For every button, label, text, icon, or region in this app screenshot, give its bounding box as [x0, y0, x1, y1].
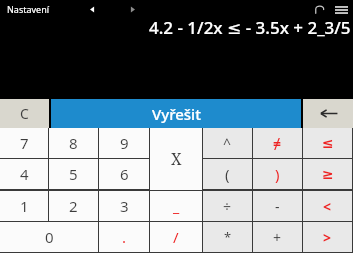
button[interactable]: *	[203, 222, 252, 252]
staticText: Vyřešit	[152, 104, 201, 124]
staticText: 0	[45, 227, 54, 247]
button[interactable]: /	[150, 222, 202, 252]
staticText: -	[275, 197, 280, 216]
button[interactable]: Previous	[84, 1, 100, 17]
staticText: ^	[223, 134, 232, 153]
button[interactable]: X	[150, 128, 202, 190]
button[interactable]: 1	[0, 191, 48, 221]
button[interactable]: 6	[99, 159, 149, 189]
button[interactable]: Vyřešit	[51, 99, 301, 128]
button[interactable]: 9	[99, 128, 149, 158]
staticText: ÷	[223, 197, 232, 216]
button[interactable]: 8	[49, 128, 98, 158]
staticText: X	[171, 148, 182, 170]
staticText: 5	[69, 164, 78, 184]
staticText: *	[224, 228, 232, 246]
button[interactable]: C	[0, 99, 49, 128]
button[interactable]: Undo	[311, 1, 327, 17]
button[interactable]: (	[203, 159, 252, 189]
staticText: _	[173, 197, 180, 216]
button[interactable]: ÷	[203, 191, 252, 221]
staticText: /	[173, 227, 179, 247]
button[interactable]: <	[303, 191, 352, 221]
staticText: <	[323, 197, 332, 216]
staticText: .	[122, 227, 127, 247]
button[interactable]: Backspace	[303, 99, 353, 128]
button[interactable]: Next	[124, 1, 140, 17]
staticText: Nastavení	[7, 3, 50, 15]
button[interactable]: Nastavení	[4, 1, 53, 17]
staticText: >	[323, 228, 332, 247]
button[interactable]: 3	[99, 191, 149, 221]
button[interactable]: ≤	[303, 128, 352, 158]
staticText: 3	[120, 196, 129, 216]
staticText: +	[273, 228, 282, 247]
staticText: 9	[120, 133, 129, 153]
staticText: ≤	[322, 135, 334, 151]
button[interactable]: _	[150, 191, 202, 221]
staticText: C	[20, 104, 29, 123]
staticText: (	[225, 164, 230, 184]
staticText: 7	[20, 133, 29, 153]
staticText: ≥	[322, 166, 334, 182]
button[interactable]: 4	[0, 159, 48, 189]
button[interactable]: ≠	[253, 128, 302, 158]
staticText: )	[275, 164, 280, 184]
button[interactable]: +	[253, 222, 302, 252]
button[interactable]: )	[253, 159, 302, 189]
staticText: 4	[20, 164, 29, 184]
button[interactable]: .	[99, 222, 149, 252]
button[interactable]: 2	[49, 191, 98, 221]
button[interactable]: 5	[49, 159, 98, 189]
button[interactable]: 0	[0, 222, 98, 252]
button[interactable]: ^	[203, 128, 252, 158]
staticText: 4.2 - 1/2x ≤ - 3.5x + 2_3/5	[149, 16, 351, 39]
button[interactable]: -	[253, 191, 302, 221]
staticText: 6	[120, 164, 129, 184]
staticText: 1	[20, 196, 29, 216]
staticText: ≠	[273, 134, 282, 153]
staticText: 8	[69, 133, 78, 153]
staticText: 2	[69, 196, 78, 216]
button[interactable]: Menu	[332, 1, 350, 19]
button[interactable]: 7	[0, 128, 48, 158]
button[interactable]: ≥	[303, 159, 352, 189]
button[interactable]: >	[303, 222, 352, 252]
